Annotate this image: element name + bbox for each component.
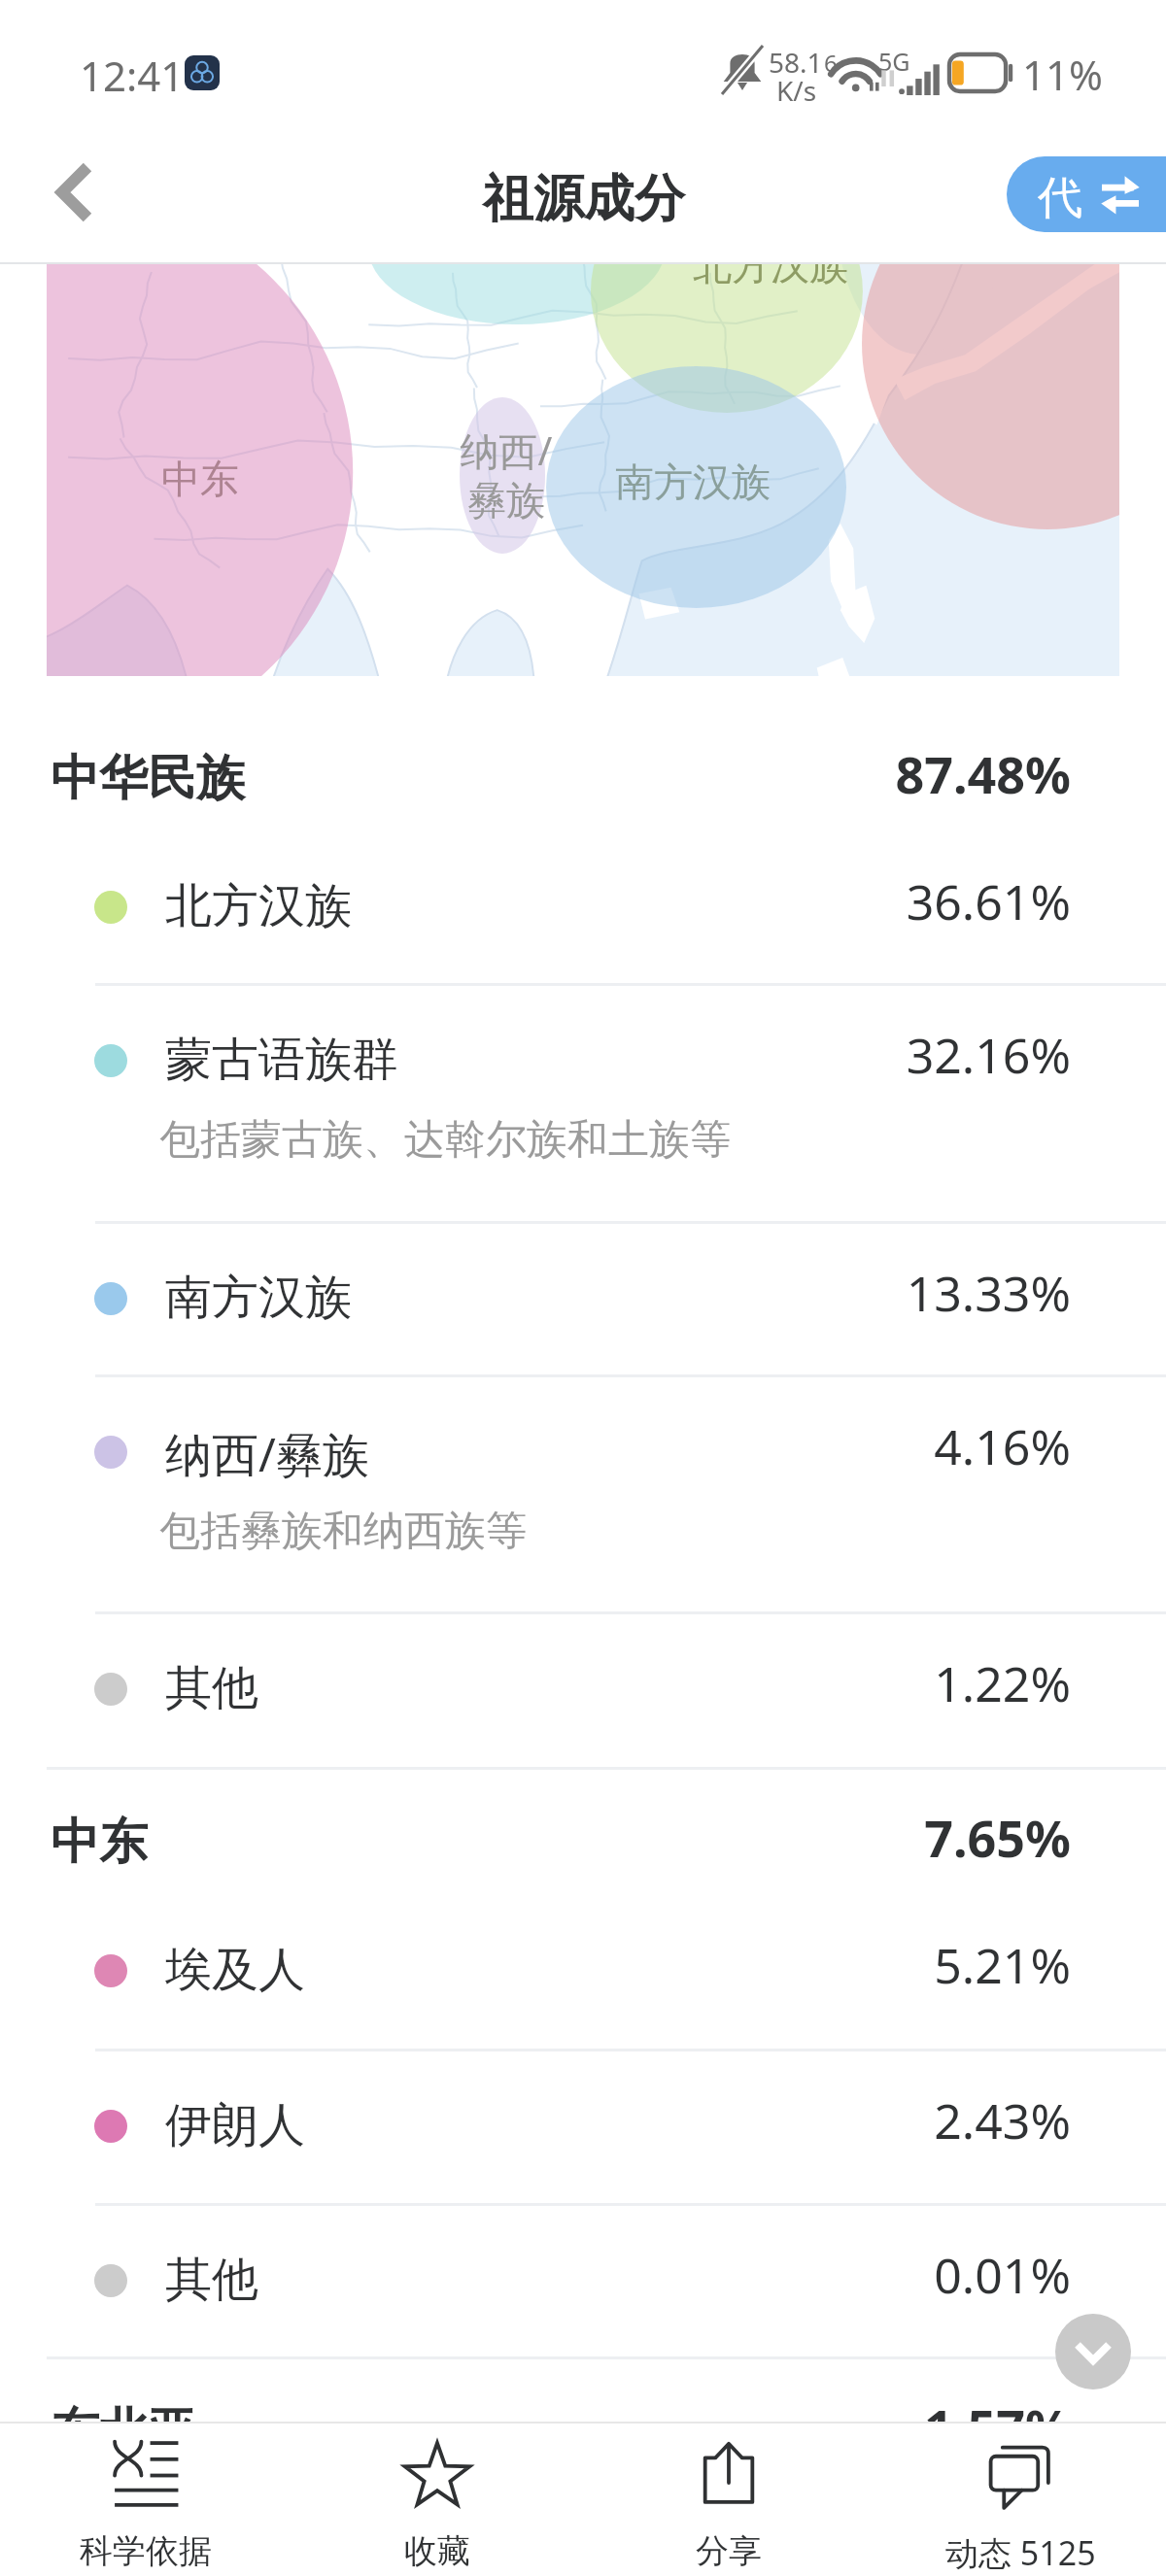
staticText: 1.22%	[682, 1650, 1071, 1716]
button[interactable]: 中东	[0, 1808, 1166, 1893]
button[interactable]: Scroll down	[1055, 2314, 1131, 2390]
button[interactable]: 蒙古语族群	[0, 983, 1166, 1221]
staticText: 纳西/	[312, 424, 701, 477]
staticText: 动态 5125	[945, 2530, 1096, 2575]
staticText: 收藏	[404, 2530, 470, 2572]
staticText: 36.61%	[682, 868, 1071, 934]
staticText: 2.43%	[682, 2087, 1071, 2153]
staticText: 13.33%	[682, 1260, 1071, 1326]
staticText: K/s	[776, 72, 817, 109]
staticText: 祖源成分	[483, 167, 685, 231]
staticText: 彝族	[312, 476, 701, 525]
staticText: 中东	[47, 455, 394, 503]
staticText: 32.16%	[682, 1022, 1071, 1088]
button[interactable]: Back	[22, 142, 123, 243]
staticText: 其他	[165, 2251, 258, 2309]
staticText: 北方汉族	[576, 264, 965, 289]
staticText: 87.48%	[682, 739, 1071, 808]
staticText: 5G	[878, 45, 910, 78]
button[interactable]: 埃及人	[0, 1893, 1166, 2047]
button[interactable]: 南方汉族	[0, 1221, 1166, 1374]
button[interactable]: 收藏	[291, 2422, 583, 2576]
button[interactable]: 代	[1007, 156, 1166, 232]
staticText: 58.1	[769, 44, 823, 81]
staticText: 埃及人	[165, 1941, 305, 1999]
staticText: 0.01%	[682, 2242, 1071, 2308]
staticText: 1.57%	[682, 2392, 1071, 2461]
staticText: 其他	[165, 1659, 258, 1717]
staticText: 东北亚	[51, 2401, 196, 2462]
staticText: 6	[824, 47, 838, 79]
button[interactable]: 其他	[0, 2203, 1166, 2356]
button[interactable]: 北方汉族	[0, 830, 1166, 983]
staticText: 科学依据	[80, 2530, 212, 2572]
staticText: 4.16%	[682, 1413, 1071, 1479]
button[interactable]: 东北亚	[0, 2397, 1166, 2483]
button[interactable]: 中华民族	[0, 744, 1166, 830]
staticText: 北方汉族	[165, 877, 352, 935]
staticText: 12:41	[80, 48, 185, 103]
staticText: 包括蒙古族、达斡尔族和土族等	[159, 1114, 731, 1166]
staticText: 分享	[696, 2530, 762, 2572]
staticText: 南方汉族	[165, 1269, 352, 1327]
staticText: 中东	[51, 1812, 148, 1873]
button[interactable]: 纳西/彝族	[0, 1374, 1166, 1612]
staticText: 代	[1038, 170, 1082, 226]
button[interactable]: 科学依据	[0, 2422, 291, 2576]
staticText: 南方汉族	[498, 458, 887, 506]
button[interactable]: 动态 5125	[874, 2422, 1166, 2576]
staticText: 伊朗人	[165, 2096, 305, 2154]
staticText: 11%	[1022, 47, 1103, 102]
button[interactable]: 伊朗人	[0, 2049, 1166, 2202]
staticText: 包括彝族和纳西族等	[159, 1506, 527, 1557]
staticText: 纳西/彝族	[165, 1422, 369, 1486]
staticText: 7.65%	[682, 1803, 1071, 1872]
button[interactable]: 其他	[0, 1611, 1166, 1765]
staticText: 5.21%	[682, 1932, 1071, 1998]
button[interactable]: 分享	[583, 2422, 874, 2576]
staticText: 蒙古语族群	[165, 1031, 398, 1089]
staticText: 中华民族	[51, 748, 245, 809]
